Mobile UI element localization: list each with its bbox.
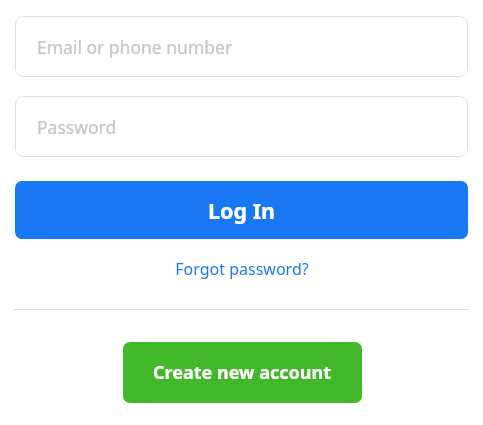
staticText: Log In [208, 196, 275, 225]
button[interactable]: Log In [15, 181, 468, 239]
staticText: Password [37, 115, 117, 139]
button[interactable]: Password [15, 96, 468, 157]
staticText: Forgot password? [175, 258, 309, 280]
staticText: Email or phone number [37, 35, 233, 59]
button[interactable]: Email or phone number [15, 16, 468, 77]
staticText: Create new account [153, 360, 332, 385]
button[interactable]: Create new account [123, 342, 362, 403]
button[interactable]: Forgot password? [0, 252, 483, 286]
